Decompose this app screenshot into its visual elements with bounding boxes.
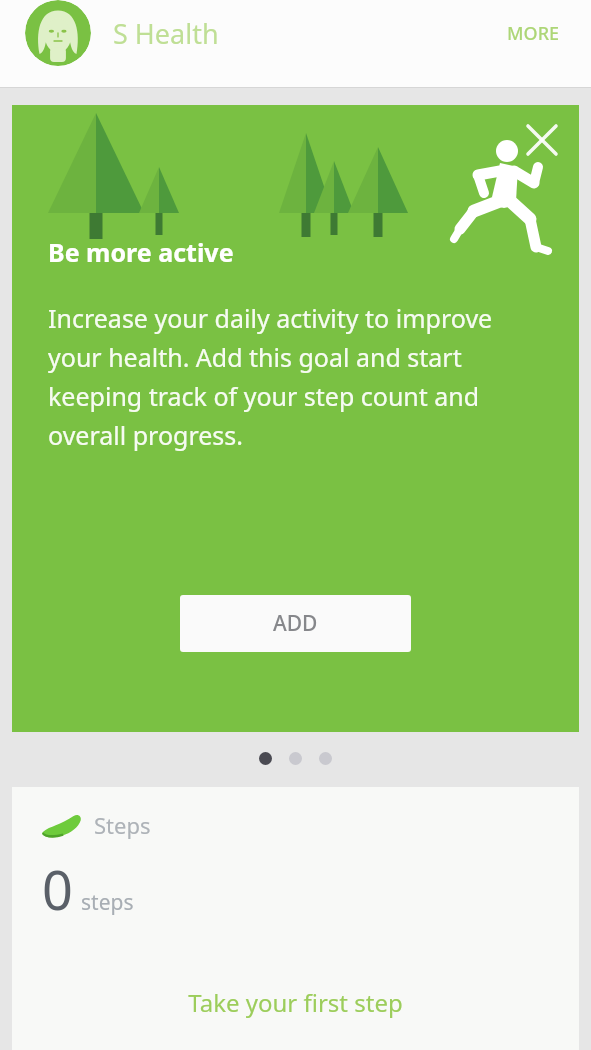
staticText: S Health	[113, 15, 219, 52]
button[interactable]: MORE	[501, 13, 566, 54]
staticText: Be more active	[48, 235, 234, 269]
button[interactable]: Close	[515, 113, 569, 167]
staticText: Increase your daily activity to improve …	[48, 301, 549, 452]
staticText: ADD	[273, 609, 318, 638]
button[interactable]: Page	[259, 752, 272, 765]
button[interactable]: ADD	[180, 595, 411, 652]
button[interactable]: Profile	[25, 0, 91, 66]
button[interactable]: Steps	[12, 787, 579, 1050]
button[interactable]: Page	[289, 752, 302, 765]
staticText: MORE	[507, 21, 560, 46]
button[interactable]: Close	[12, 105, 579, 732]
button[interactable]: Page	[319, 752, 332, 765]
staticText: 0	[42, 852, 73, 926]
staticText: Steps	[94, 810, 151, 840]
staticText: steps	[81, 888, 134, 917]
staticText: Take your first step	[12, 986, 579, 1019]
